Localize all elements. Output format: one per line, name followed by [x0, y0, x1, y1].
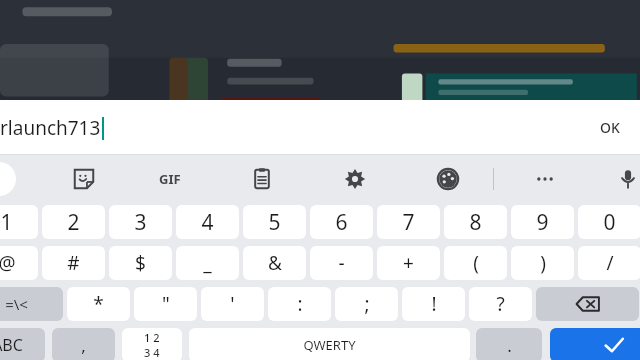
button[interactable]: @: [0, 246, 38, 280]
button[interactable]: Themes: [428, 159, 468, 199]
button[interactable]: Backspace: [536, 287, 639, 321]
button[interactable]: 9: [511, 205, 574, 239]
other: Enter: [601, 332, 627, 358]
button[interactable]: (: [444, 246, 507, 280]
staticText: (: [473, 250, 479, 276]
staticText: @: [0, 250, 16, 276]
button[interactable]: :: [268, 287, 331, 321]
staticText: .: [507, 334, 512, 357]
button[interactable]: 1: [0, 205, 38, 239]
button[interactable]: *: [67, 287, 130, 321]
button[interactable]: .: [476, 328, 542, 360]
button[interactable]: ?: [469, 287, 532, 321]
button[interactable]: More options: [525, 159, 565, 199]
button[interactable]: 3: [109, 205, 172, 239]
button[interactable]: 6: [310, 205, 373, 239]
staticText: 1: [0, 208, 13, 237]
staticText: 0: [603, 208, 616, 237]
staticText: 3 4: [144, 345, 160, 360]
staticText: 5: [268, 208, 281, 237]
button[interactable]: Voice input: [608, 159, 640, 199]
button[interactable]: ,: [52, 328, 115, 360]
staticText: =\<: [5, 294, 28, 314]
button[interactable]: 4: [176, 205, 239, 239]
button[interactable]: &: [243, 246, 306, 280]
staticText: _: [203, 250, 212, 276]
staticText: :: [297, 291, 303, 317]
staticText: +: [403, 250, 414, 276]
button[interactable]: ': [201, 287, 264, 321]
staticText: QWERTY: [303, 336, 356, 354]
button[interactable]: Settings: [335, 159, 375, 199]
button[interactable]: /: [578, 246, 640, 280]
staticText: ?: [496, 291, 505, 317]
button[interactable]: 5: [243, 205, 306, 239]
button[interactable]: rlaunch713: [0, 100, 580, 155]
button[interactable]: ABC: [0, 328, 45, 360]
button[interactable]: _: [176, 246, 239, 280]
staticText: #: [67, 250, 80, 276]
button[interactable]: QWERTY: [189, 328, 470, 360]
staticText: -: [338, 250, 345, 276]
staticText: &: [268, 250, 282, 276]
button[interactable]: #: [42, 246, 105, 280]
button[interactable]: 1 2: [122, 328, 182, 360]
button[interactable]: Google search: [0, 162, 16, 196]
button[interactable]: ;: [335, 287, 398, 321]
button[interactable]: 2: [42, 205, 105, 239]
button[interactable]: 0: [578, 205, 640, 239]
staticText: ABC: [0, 334, 23, 356]
staticText: ;: [364, 291, 370, 317]
button[interactable]: OK: [580, 100, 640, 155]
staticText: GIF: [159, 170, 181, 188]
staticText: ,: [81, 334, 86, 357]
staticText: rlaunch713: [0, 115, 101, 141]
staticText: !: [431, 291, 437, 317]
button[interactable]: ): [511, 246, 574, 280]
button[interactable]: Enter: [550, 328, 640, 360]
button[interactable]: $: [109, 246, 172, 280]
staticText: 9: [536, 208, 549, 237]
button[interactable]: 8: [444, 205, 507, 239]
staticText: *: [93, 291, 104, 317]
staticText: 4: [201, 208, 214, 237]
staticText: 1 2: [144, 330, 160, 345]
staticText: $: [135, 250, 146, 276]
staticText: 6: [335, 208, 348, 237]
button[interactable]: 7: [377, 205, 440, 239]
button[interactable]: -: [310, 246, 373, 280]
staticText: ": [162, 291, 170, 317]
button[interactable]: +: [377, 246, 440, 280]
staticText: /: [606, 250, 614, 276]
staticText: ': [230, 291, 235, 317]
staticText: 2: [67, 208, 80, 237]
button[interactable]: ": [134, 287, 197, 321]
staticText: OK: [600, 118, 620, 137]
staticText: 3: [134, 208, 147, 237]
button[interactable]: !: [402, 287, 465, 321]
staticText: 7: [402, 208, 415, 237]
button[interactable]: Clipboard: [242, 159, 282, 199]
staticText: ): [540, 250, 546, 276]
button[interactable]: Stickers: [64, 159, 104, 199]
other: Backspace: [575, 291, 601, 317]
button[interactable]: =\<: [0, 287, 63, 321]
button[interactable]: GIF: [150, 159, 190, 199]
staticText: 8: [469, 208, 482, 237]
